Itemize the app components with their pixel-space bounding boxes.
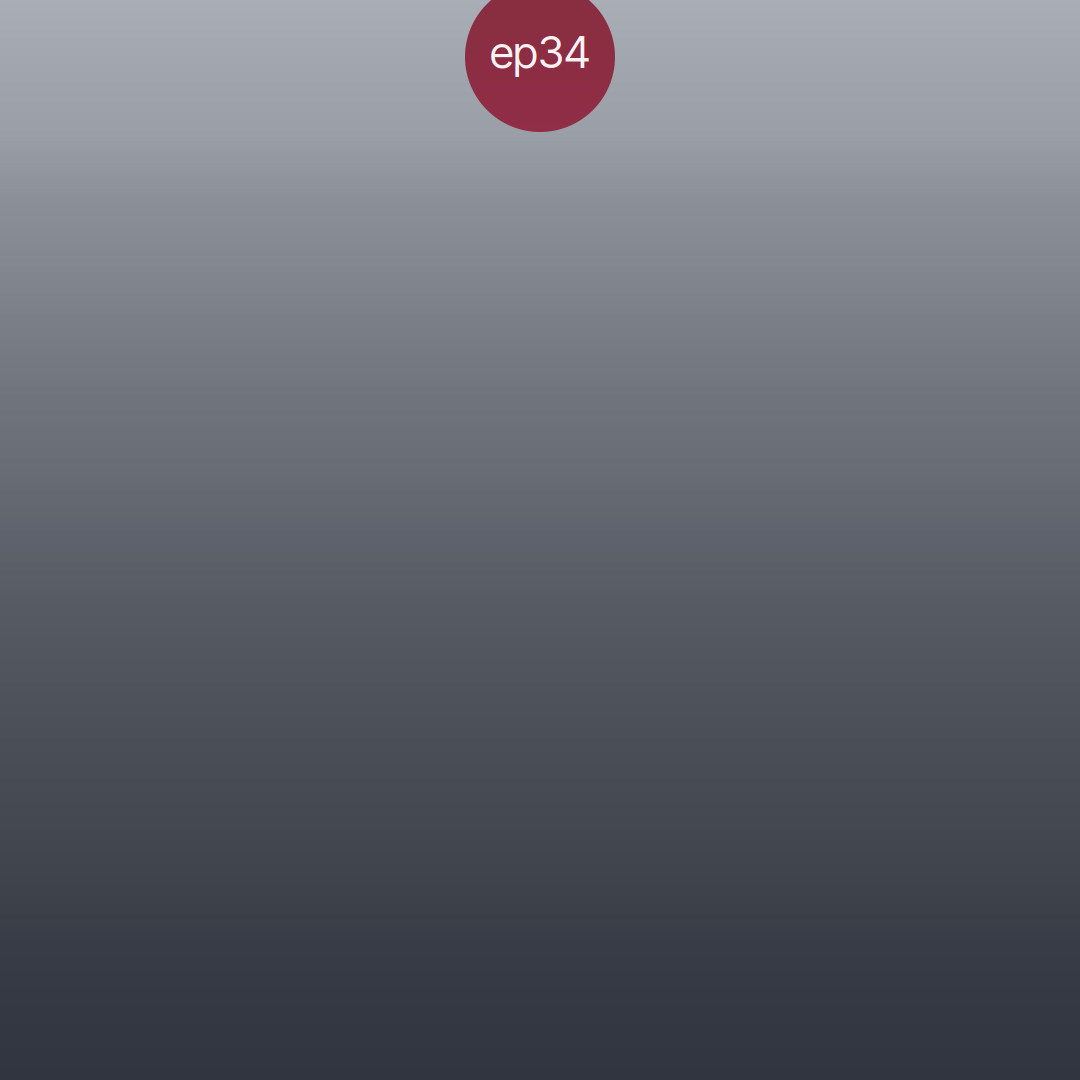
- button[interactable]: ep34: [465, 0, 615, 132]
- staticText: ep34: [490, 25, 590, 79]
